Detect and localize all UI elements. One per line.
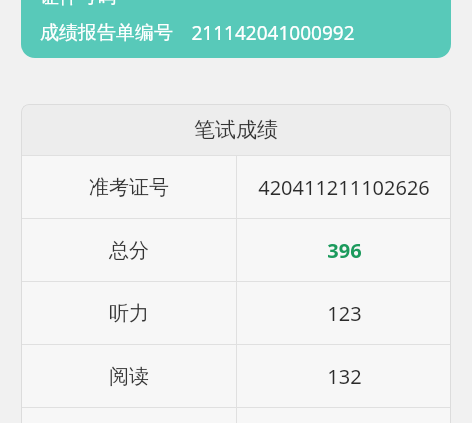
staticText: 成绩报告单编号 <box>40 21 173 45</box>
staticText: 420411211102626 <box>258 174 430 201</box>
staticText: 123 <box>327 300 362 327</box>
staticText: 396 <box>327 237 362 264</box>
button[interactable]: 听力 <box>21 282 451 344</box>
button[interactable]: 证件号码 <box>21 0 451 58</box>
staticText: 阅读 <box>109 364 149 389</box>
button[interactable]: 笔试成绩 <box>21 104 451 155</box>
staticText: 听力 <box>109 301 149 326</box>
staticText: 211142041000992 <box>191 20 355 46</box>
staticText: 笔试成绩 <box>194 117 278 143</box>
staticText: 证件号码 <box>40 0 116 9</box>
staticText: 总分 <box>109 238 149 263</box>
button[interactable]: 阅读 <box>21 345 451 407</box>
staticText: 132 <box>327 363 362 390</box>
button[interactable]: 准考证号 <box>21 156 451 218</box>
button[interactable]: 总分 <box>21 219 451 281</box>
staticText: 准考证号 <box>89 175 169 200</box>
